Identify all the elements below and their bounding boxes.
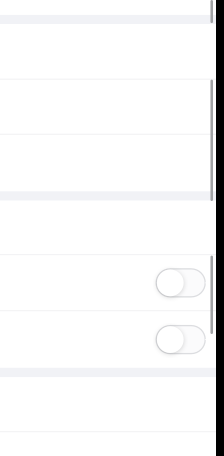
button[interactable] [0,135,216,191]
button[interactable] [0,80,216,135]
button[interactable] [0,0,216,15]
button[interactable] [0,255,216,311]
button[interactable] [0,311,216,368]
